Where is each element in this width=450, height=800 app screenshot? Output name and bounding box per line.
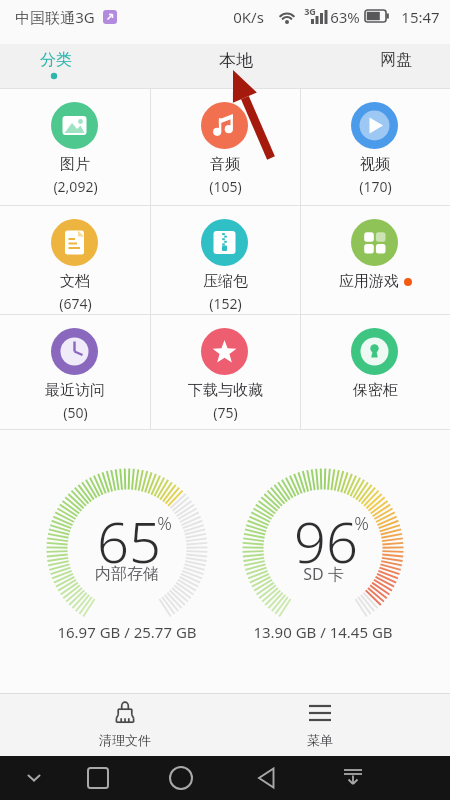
staticText: (75) xyxy=(213,403,238,422)
staticText: 中国联通3G xyxy=(15,7,95,27)
button[interactable]: 应用游戏 xyxy=(300,205,450,314)
staticText: (152) xyxy=(209,294,242,313)
button[interactable] xyxy=(329,756,377,800)
staticText: 网盘 xyxy=(380,50,412,70)
staticText: 本地 xyxy=(219,50,253,71)
staticText: 96 xyxy=(294,503,358,573)
staticText: % xyxy=(157,511,172,536)
button[interactable]: 保密柜 xyxy=(300,314,450,430)
staticText: 0K/s xyxy=(233,7,264,27)
staticText: 内部存储 xyxy=(95,564,159,584)
button[interactable]: 视频 xyxy=(300,88,450,205)
staticText: 13.90 GB / 14.45 GB xyxy=(253,622,393,642)
staticText: 音频 xyxy=(210,155,240,174)
staticText: 下载与收藏 xyxy=(188,381,263,400)
staticText: (170) xyxy=(359,177,392,196)
staticText: 清理文件 xyxy=(99,732,151,748)
staticText: 最近访问 xyxy=(45,381,105,400)
button[interactable] xyxy=(10,756,58,800)
staticText: 分类 xyxy=(40,50,72,70)
staticText: (105) xyxy=(209,177,242,196)
staticText: (2,092) xyxy=(53,177,98,196)
staticText: SD 卡 xyxy=(303,563,344,585)
button[interactable] xyxy=(197,44,277,88)
button[interactable]: 图片 xyxy=(0,88,150,205)
button[interactable] xyxy=(157,756,205,800)
staticText: (674) xyxy=(59,294,92,313)
button[interactable] xyxy=(243,756,291,800)
button[interactable]: 文档 xyxy=(0,205,150,314)
button[interactable]: 最近访问 xyxy=(0,314,150,430)
button[interactable]: 音频 xyxy=(150,88,300,205)
staticText: 图片 xyxy=(60,155,90,174)
staticText: 应用游戏 xyxy=(339,272,399,291)
staticText: 63% xyxy=(330,7,360,27)
staticText: 压缩包 xyxy=(203,272,248,291)
staticText: 3G xyxy=(304,5,316,17)
staticText: 视频 xyxy=(360,155,390,174)
staticText: 15:47 xyxy=(401,7,440,27)
staticText: 文档 xyxy=(60,272,90,291)
button[interactable] xyxy=(74,756,122,800)
staticText: 16.97 GB / 25.77 GB xyxy=(57,622,197,642)
button[interactable]: 菜单 xyxy=(260,693,380,756)
staticText: 保密柜 xyxy=(353,381,398,400)
staticText: (50) xyxy=(63,403,88,422)
staticText: 菜单 xyxy=(307,732,333,748)
button[interactable] xyxy=(356,44,436,88)
button[interactable]: 下载与收藏 xyxy=(150,314,300,430)
button[interactable] xyxy=(16,44,96,88)
button[interactable]: 压缩包 xyxy=(150,205,300,314)
button[interactable]: 清理文件 xyxy=(65,693,185,756)
staticText: % xyxy=(354,511,369,536)
staticText: 65 xyxy=(97,503,161,573)
